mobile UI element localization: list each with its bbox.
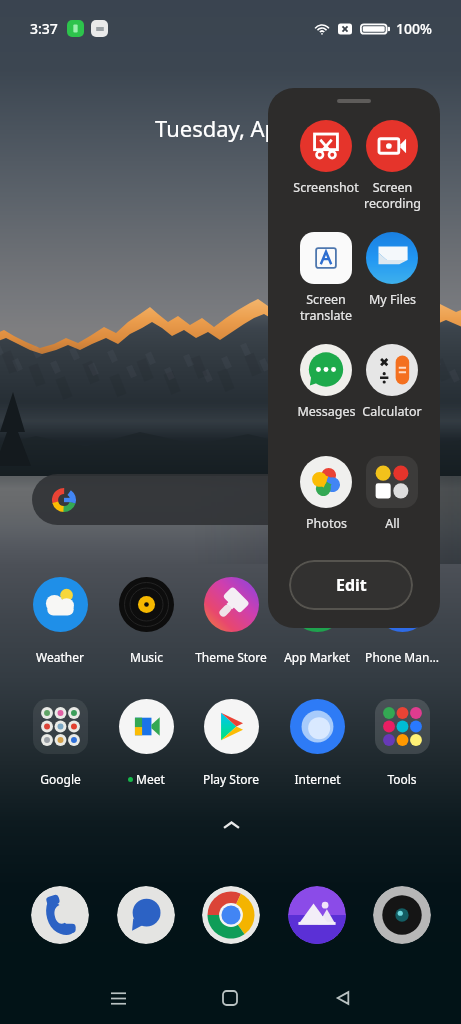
button[interactable]: Google Search — [32, 474, 332, 525]
staticText: 3:37 — [30, 19, 58, 38]
button[interactable]: App Market — [275, 577, 359, 665]
staticText: App Market — [284, 649, 350, 665]
button[interactable]: Photos — [286, 456, 366, 532]
staticText: Theme Store — [195, 649, 267, 665]
button[interactable]: All — [352, 456, 432, 532]
staticText: Tools — [387, 771, 417, 787]
staticText: Music — [130, 649, 163, 665]
button[interactable]: Screenshot — [286, 120, 366, 196]
button[interactable]: Home — [208, 976, 252, 1020]
button[interactable]: Theme Store — [189, 577, 273, 665]
button[interactable]: Chrome — [202, 886, 260, 944]
button[interactable]: Messages — [117, 886, 175, 944]
button[interactable]: Gallery — [288, 886, 346, 944]
button[interactable]: Messages — [286, 344, 366, 420]
staticText: Screenshot — [293, 179, 359, 196]
button[interactable]: Screen recording — [352, 120, 432, 211]
button[interactable]: Screen translate — [286, 232, 366, 323]
staticText: My Files — [369, 291, 416, 308]
staticText: Edit — [336, 574, 367, 596]
button[interactable]: Camera — [373, 886, 431, 944]
button[interactable]: Recents — [96, 976, 140, 1020]
staticText: All — [385, 515, 400, 532]
staticText: Messages — [297, 403, 356, 420]
button[interactable]: Tools — [360, 699, 444, 787]
staticText: Weather — [36, 649, 84, 665]
staticText: Screen recording — [364, 179, 421, 211]
button[interactable]: Music — [104, 577, 188, 665]
button[interactable]: My Files — [352, 232, 432, 308]
button[interactable]: Phone — [31, 886, 89, 944]
staticText: Photos — [306, 515, 347, 532]
button[interactable]: Back — [321, 976, 365, 1020]
button[interactable]: Internet — [275, 699, 359, 787]
button[interactable]: Phone Man… — [360, 577, 444, 665]
button[interactable]: Calculator — [352, 344, 432, 420]
button[interactable]: Weather — [18, 577, 102, 665]
button[interactable]: Play Store — [189, 699, 273, 787]
staticText: 100% — [396, 19, 432, 38]
button[interactable]: Edit — [289, 560, 413, 610]
staticText: Tuesday, Apr 1 — [155, 113, 306, 143]
staticText: Screen translate — [300, 291, 352, 323]
button[interactable]: Open app drawer — [217, 811, 245, 839]
staticText: Google — [40, 771, 81, 787]
staticText: Internet — [294, 771, 341, 787]
staticText: Play Store — [203, 771, 259, 787]
button[interactable]: Meet — [104, 699, 188, 787]
staticText: Calculator — [362, 403, 422, 420]
staticText: Phone Man… — [365, 649, 439, 665]
button[interactable]: Google — [18, 699, 102, 787]
staticText: Meet — [136, 771, 165, 787]
